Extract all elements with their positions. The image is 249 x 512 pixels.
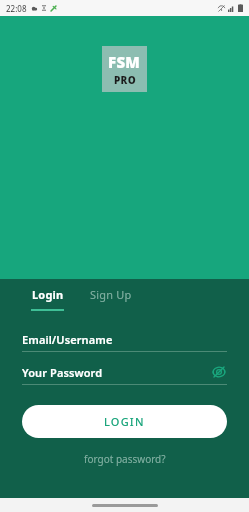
staticText: Sign Up [90, 287, 132, 302]
button[interactable]: Sign Up [81, 287, 141, 311]
button[interactable]: Email/Username [22, 330, 227, 352]
staticText: FSM [108, 52, 141, 72]
button[interactable]: LOGIN [22, 405, 227, 438]
staticText: Email/Username [22, 332, 227, 347]
button[interactable]: Your Password [22, 363, 227, 385]
staticText: LOGIN [104, 414, 145, 429]
staticText: 22:08 [6, 3, 27, 14]
button[interactable]: forgot password? [80, 448, 170, 470]
staticText: Your Password [22, 365, 211, 380]
button[interactable]: Login [22, 287, 73, 311]
staticText: PRO [114, 73, 136, 87]
button[interactable]: Show password [211, 364, 227, 380]
staticText: Login [32, 287, 64, 302]
